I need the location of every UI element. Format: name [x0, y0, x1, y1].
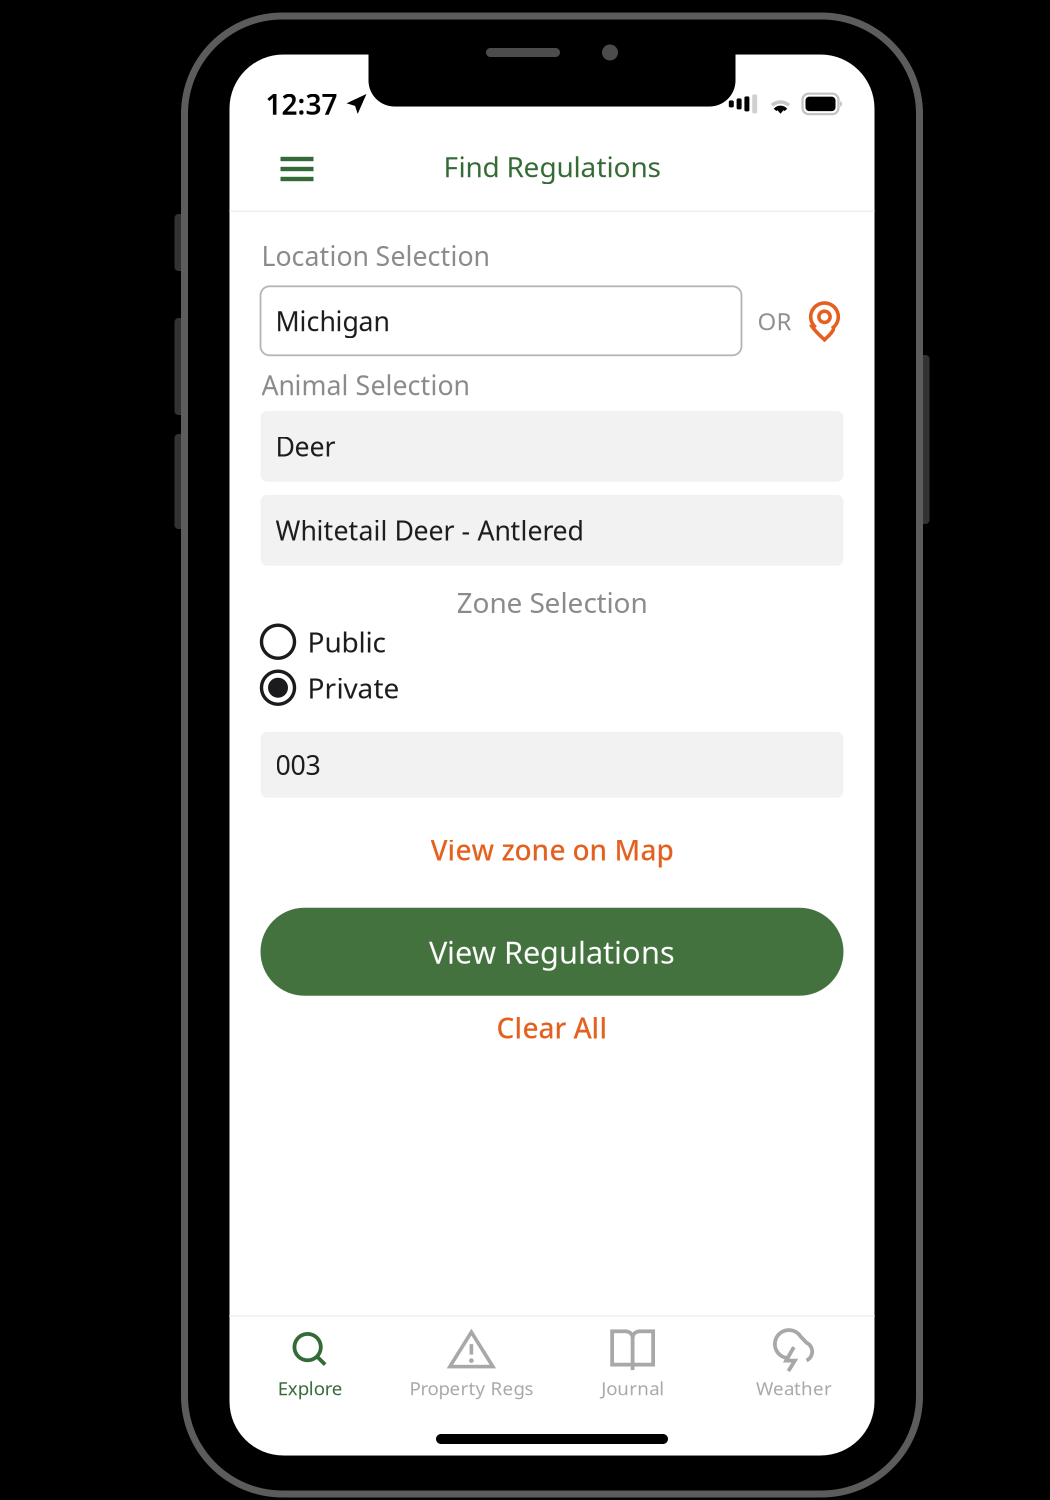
button[interactable]: Journal: [552, 1328, 713, 1400]
staticText: Property Regs: [409, 1376, 533, 1400]
button[interactable]: Clear All: [229, 996, 874, 1050]
button[interactable]: Public: [260, 622, 874, 662]
staticText: Zone Selection: [456, 584, 647, 621]
staticText: Explore: [278, 1376, 343, 1400]
staticText: Find Regulations: [443, 148, 660, 185]
staticText: View Regulations: [429, 931, 675, 972]
staticText: Location Selection: [261, 238, 489, 273]
staticText: Clear All: [496, 1009, 607, 1046]
button[interactable]: Explore: [229, 1328, 391, 1400]
staticText: Public: [307, 623, 385, 660]
staticText: Deer: [275, 428, 335, 464]
button[interactable]: 003: [260, 732, 843, 798]
button[interactable]: Use current location: [807, 300, 841, 341]
staticText: 003: [275, 747, 320, 782]
button[interactable]: Whitetail Deer - Antlered: [260, 495, 843, 566]
button[interactable]: Menu: [276, 144, 317, 189]
staticText: Journal: [601, 1376, 664, 1400]
staticText: Private: [307, 669, 399, 706]
staticText: Animal Selection: [261, 367, 469, 403]
button[interactable]: Weather: [713, 1328, 874, 1400]
staticText: Weather: [756, 1376, 832, 1400]
button[interactable]: Property Regs: [391, 1328, 552, 1400]
button[interactable]: View Regulations: [260, 872, 843, 996]
staticText: 12:37: [265, 85, 337, 122]
button[interactable]: View zone on Map: [229, 798, 874, 872]
staticText: View zone on Map: [430, 831, 673, 868]
staticText: Michigan: [275, 303, 389, 338]
button[interactable]: Deer: [260, 411, 843, 482]
staticText: Whitetail Deer - Antlered: [275, 512, 583, 548]
button[interactable]: Private: [260, 668, 874, 708]
staticText: OR: [757, 305, 791, 337]
